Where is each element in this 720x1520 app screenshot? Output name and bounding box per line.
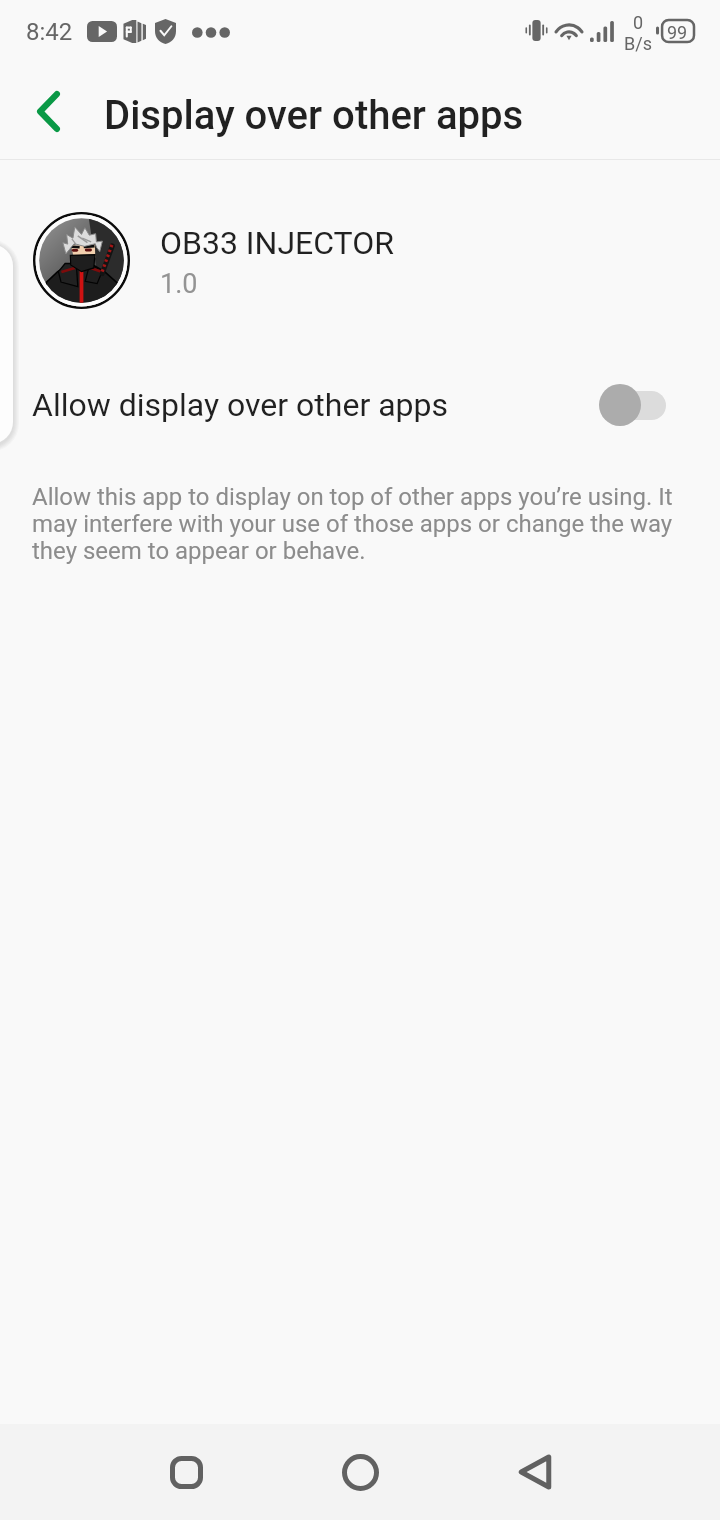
staticText: B/s bbox=[624, 33, 652, 54]
button[interactable]: Navigate up bbox=[15, 78, 81, 144]
button[interactable]: Back bbox=[488, 1425, 582, 1519]
button[interactable]: Allow display over other apps bbox=[0, 358, 720, 452]
staticText: Display over other apps bbox=[104, 92, 524, 139]
button[interactable]: Home bbox=[313, 1425, 407, 1519]
button[interactable]: Allow display over other apps toggle, of… bbox=[599, 382, 666, 428]
button[interactable]: OB33 INJECTOR bbox=[0, 197, 720, 314]
staticText: Allow display over other apps bbox=[32, 386, 449, 424]
button[interactable]: Recent apps bbox=[139, 1425, 233, 1519]
staticText: 99 bbox=[667, 22, 688, 43]
staticText: 1.0 bbox=[160, 268, 198, 300]
staticText: Allow this app to display on top of othe… bbox=[32, 483, 692, 565]
staticText: 0 bbox=[633, 12, 644, 33]
staticText: OB33 INJECTOR bbox=[160, 224, 394, 262]
staticText: 8:42 bbox=[26, 18, 73, 46]
